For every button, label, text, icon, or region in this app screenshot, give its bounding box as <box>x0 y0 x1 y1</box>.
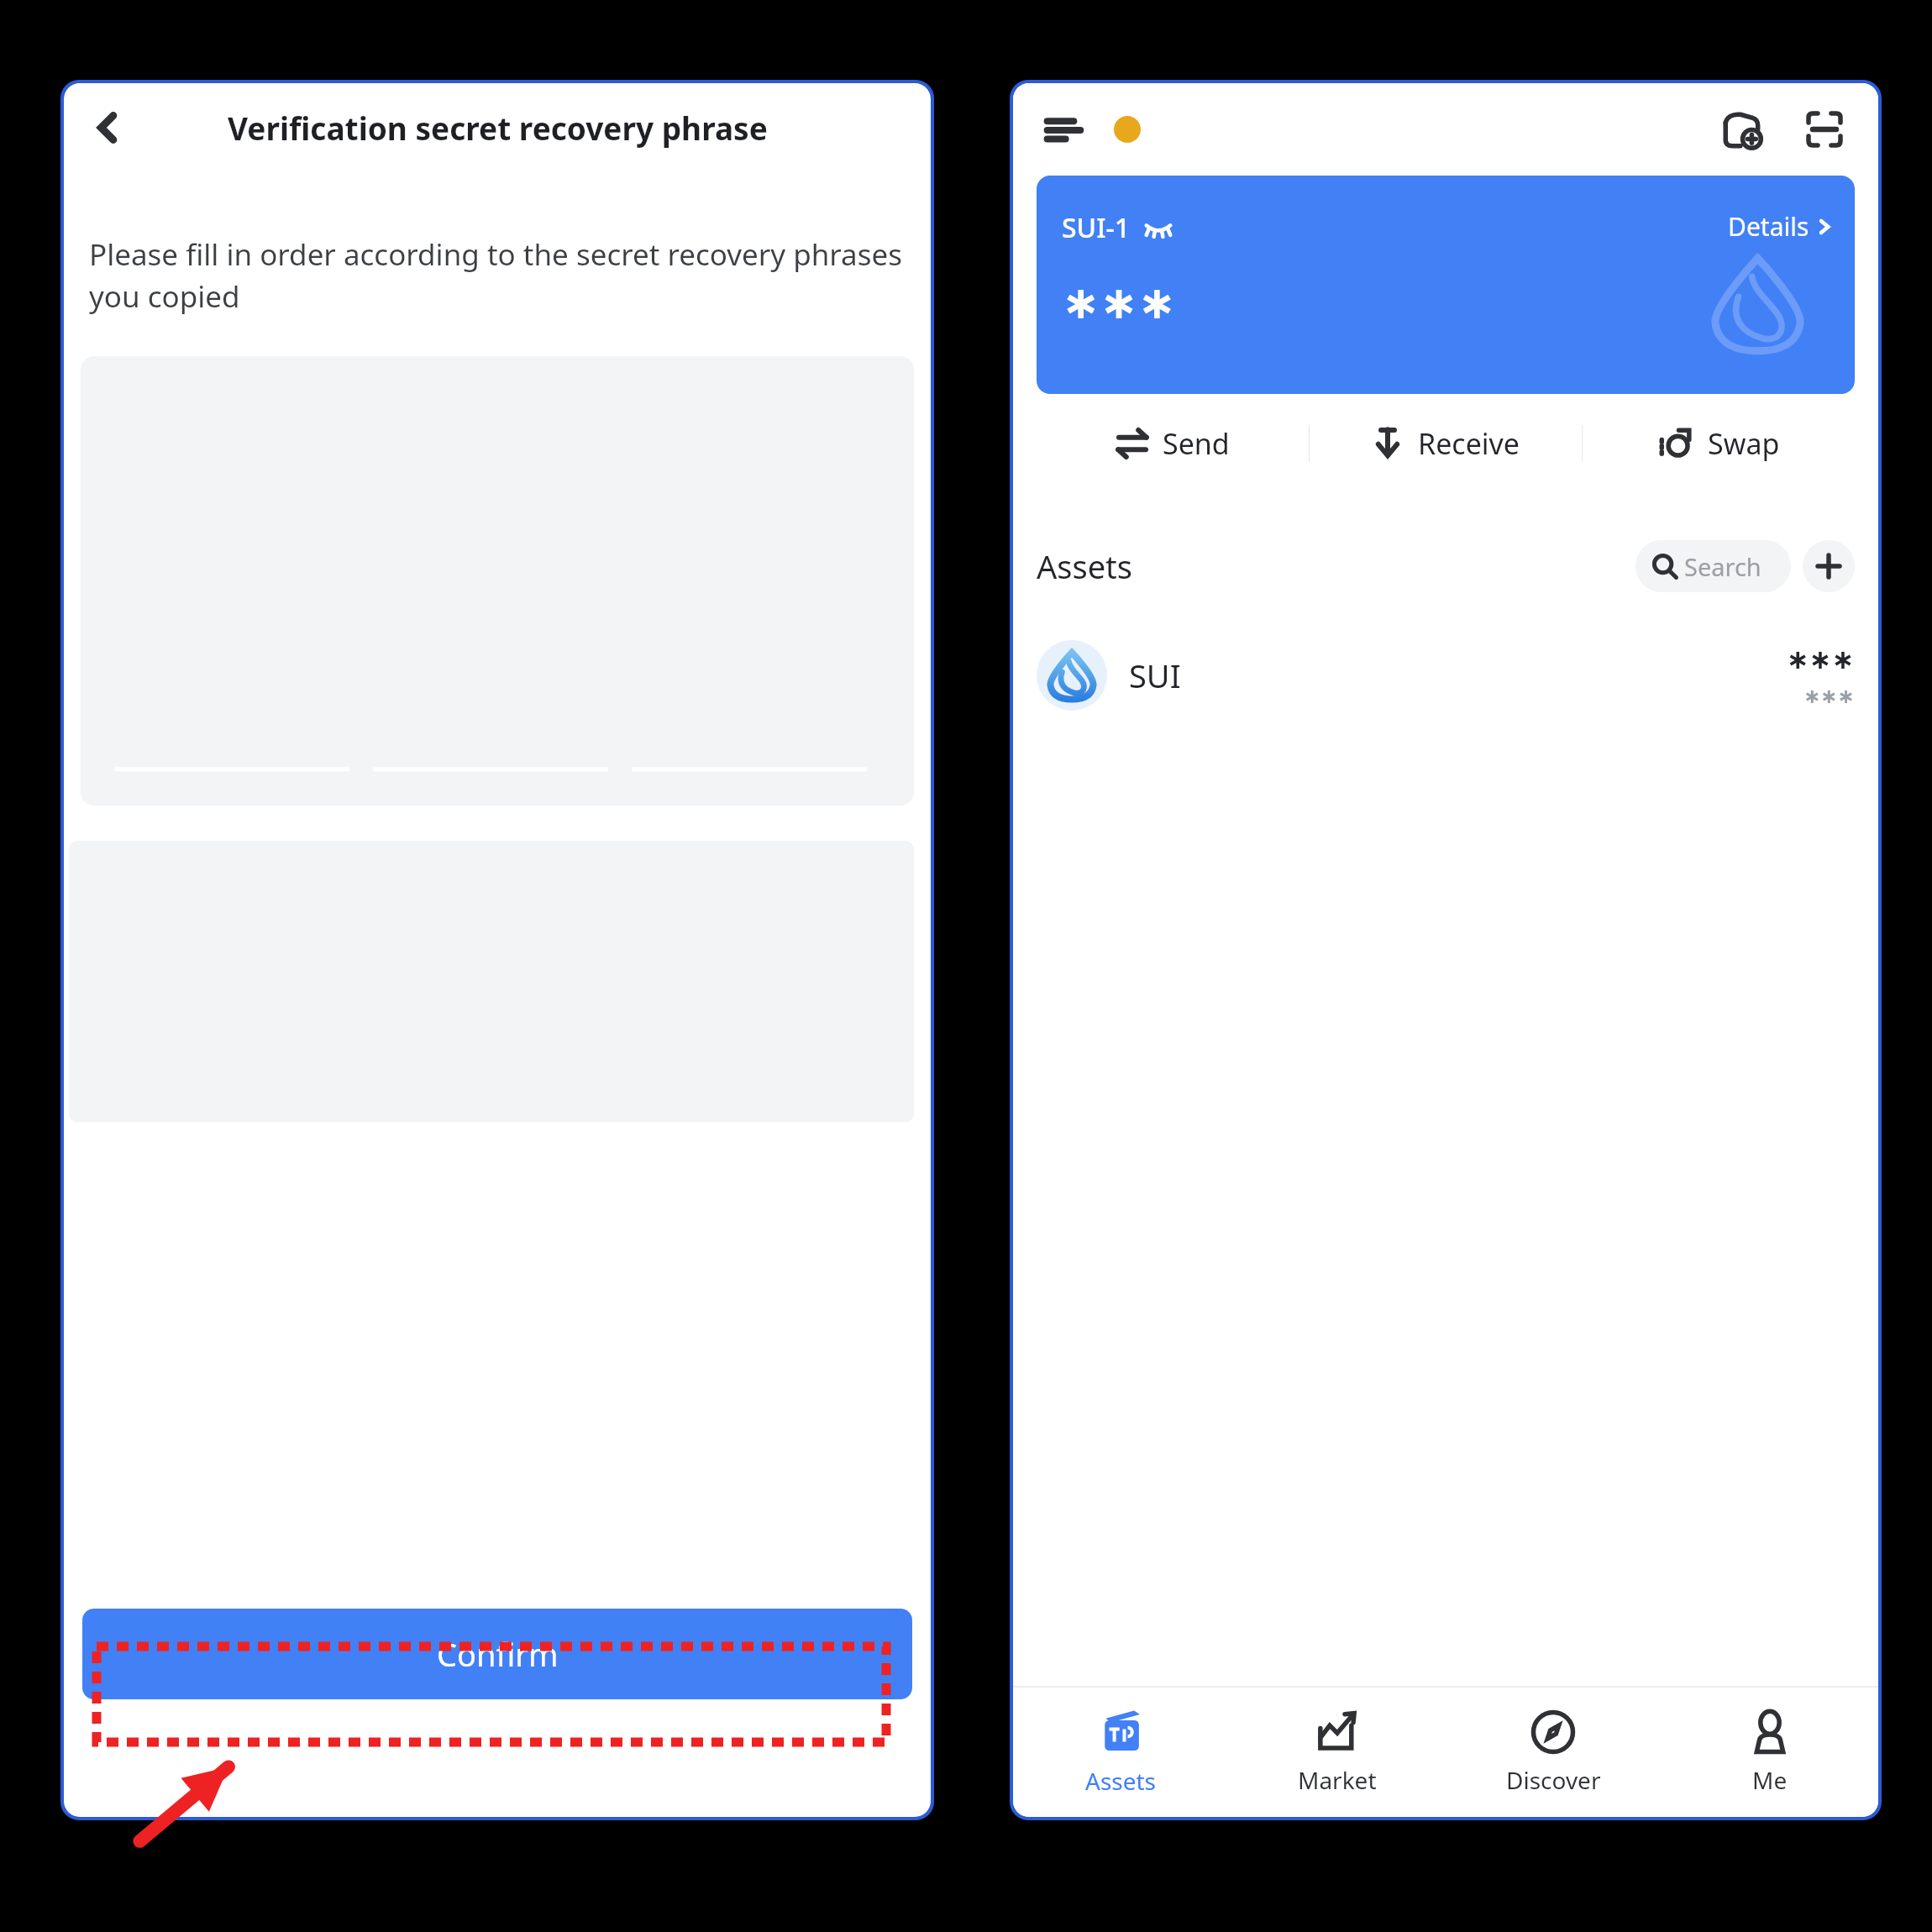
button[interactable]: SUI-1 <box>1037 176 1855 394</box>
staticText: Send <box>1163 424 1230 463</box>
staticText: Assets <box>1085 1765 1157 1797</box>
button[interactable]: Details <box>1728 209 1833 244</box>
button[interactable]: Menu <box>1033 99 1094 160</box>
staticText: Market <box>1298 1764 1377 1796</box>
button[interactable]: Network status <box>1114 116 1141 143</box>
button[interactable]: Market <box>1229 1687 1445 1817</box>
staticText: Assets <box>1037 544 1133 588</box>
button[interactable]: Swap <box>1583 394 1855 493</box>
button[interactable]: SUI <box>1013 621 1878 730</box>
button[interactable]: Assets <box>1013 1687 1229 1817</box>
button[interactable]: Me <box>1662 1687 1878 1817</box>
button[interactable]: Receive <box>1310 394 1582 493</box>
button[interactable]: Search <box>1635 540 1791 592</box>
button[interactable]: Confirm <box>82 1609 912 1699</box>
button[interactable]: Back <box>76 96 139 160</box>
staticText: SUI-1 <box>1062 209 1131 246</box>
staticText: Please fill in order according to the se… <box>89 234 906 316</box>
staticText: Receive <box>1418 424 1520 463</box>
staticText: Confirm <box>437 1632 559 1676</box>
button[interactable]: Send <box>1037 394 1309 493</box>
staticText: SUI <box>1129 654 1181 697</box>
button[interactable]: Add token <box>1803 540 1855 592</box>
staticText: Swap <box>1708 424 1780 463</box>
staticText: ∗∗∗ <box>1787 643 1855 675</box>
button[interactable]: Add wallet <box>1710 97 1774 161</box>
staticText: Search <box>1684 550 1761 583</box>
staticText: ∗∗∗ <box>1062 276 1176 329</box>
button[interactable]: Scan <box>1793 97 1856 161</box>
button[interactable]: Discover <box>1445 1687 1662 1817</box>
staticText: Discover <box>1506 1764 1601 1796</box>
staticText: ∗∗∗ <box>1803 685 1855 708</box>
staticText: Details <box>1728 209 1809 244</box>
staticText: Me <box>1752 1764 1788 1796</box>
staticText: Verification secret recovery phrase <box>228 107 768 149</box>
